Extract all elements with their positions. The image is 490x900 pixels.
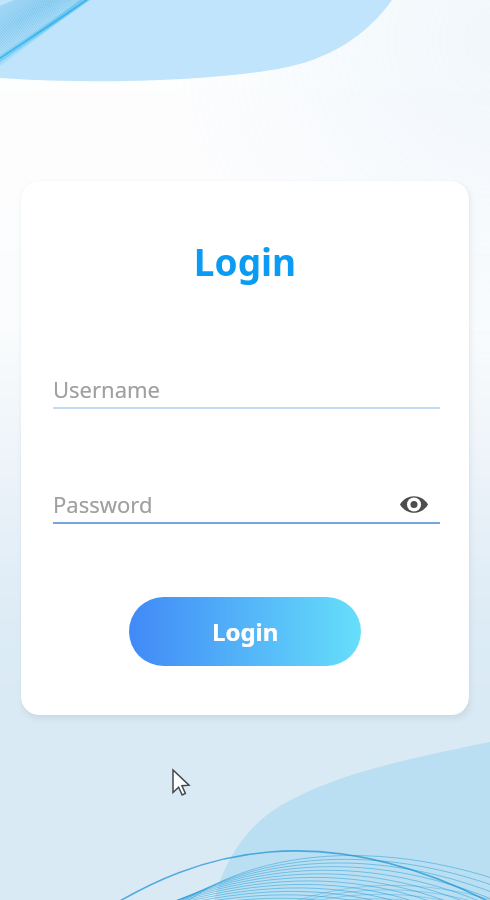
staticText: Username	[53, 374, 161, 404]
button[interactable]: Show password	[397, 489, 431, 519]
staticText: Login	[21, 236, 469, 286]
staticText: Password	[53, 489, 153, 519]
button[interactable]: Login	[129, 597, 361, 666]
staticText: Login	[212, 615, 279, 648]
